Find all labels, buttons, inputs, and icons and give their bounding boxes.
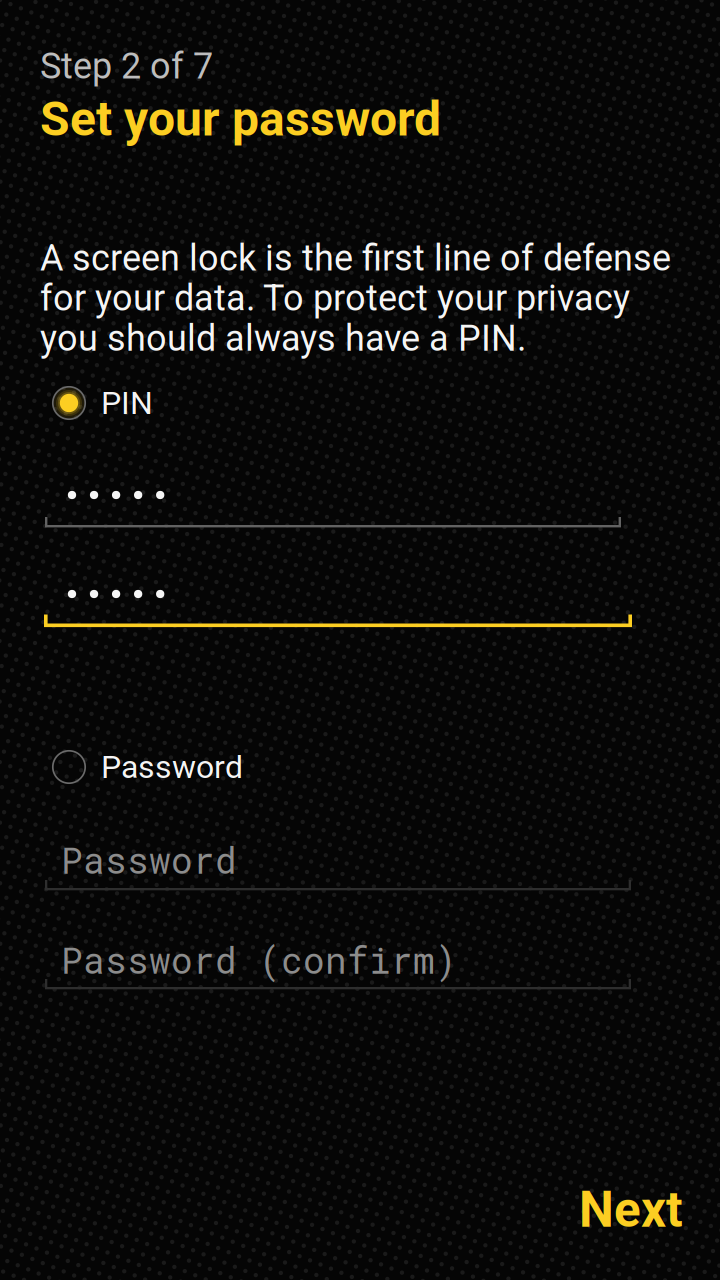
staticText: Next (579, 1181, 683, 1239)
staticText: Password (101, 748, 243, 786)
staticText: A screen lock is the first line of defen… (40, 237, 671, 360)
staticText: Password (61, 836, 237, 883)
staticText: Set your password (40, 91, 441, 147)
staticText: PIN (101, 384, 153, 422)
button[interactable]: Password (52, 743, 392, 791)
button[interactable]: PIN (52, 379, 352, 427)
staticText: Password (confirm) (61, 936, 457, 983)
button[interactable]: Next (558, 1168, 704, 1252)
staticText: Step 2 of 7 (40, 45, 213, 87)
